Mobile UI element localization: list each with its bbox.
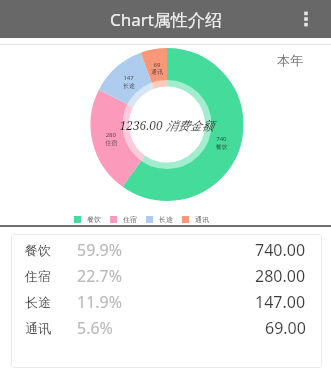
staticText: 住宿: [123, 215, 137, 224]
staticText: Chart属性介绍: [110, 8, 222, 31]
staticText: 11.9%: [77, 291, 123, 313]
staticText: 通讯: [25, 320, 51, 336]
staticText: 长途: [25, 294, 51, 310]
staticText: 餐饮: [25, 242, 51, 258]
staticText: 5.6%: [77, 317, 113, 339]
button[interactable]: 住宿: [11, 263, 322, 289]
staticText: 通讯: [195, 215, 209, 224]
staticText: 740.00: [255, 239, 306, 261]
staticText: 280.00: [255, 265, 306, 287]
button[interactable]: 餐饮: [11, 237, 322, 263]
button[interactable]: 通讯: [11, 315, 322, 341]
button[interactable]: 长途: [11, 289, 322, 315]
staticText: 长途: [159, 215, 173, 224]
staticText: 22.7%: [77, 265, 123, 287]
staticText: 本年: [277, 52, 303, 68]
staticText: 69.00: [265, 317, 306, 339]
staticText: 59.9%: [77, 239, 123, 261]
staticText: 餐饮: [87, 215, 101, 224]
staticText: 147.00: [255, 291, 306, 313]
button[interactable]: More options: [293, 6, 319, 32]
staticText: 住宿: [25, 268, 51, 284]
